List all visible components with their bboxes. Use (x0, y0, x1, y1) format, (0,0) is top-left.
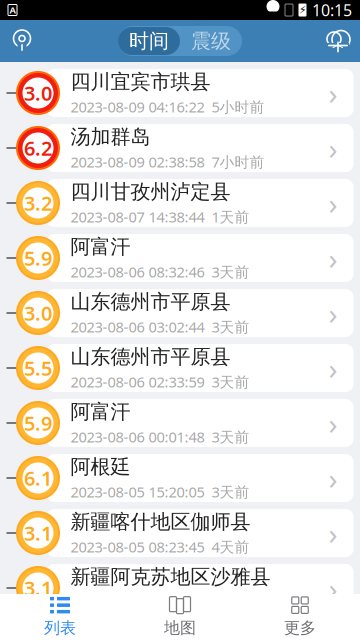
button[interactable]: 新疆喀什地区伽师县 (0, 509, 360, 557)
button[interactable]: 定位 (0, 20, 44, 62)
button[interactable]: 四川甘孜州泸定县 (0, 179, 360, 227)
staticText: 2023-08-05 15:20:05 (70, 482, 204, 501)
staticText: 5小时前 (211, 97, 264, 116)
staticText: 1天前 (211, 207, 249, 226)
staticText: › (328, 458, 337, 497)
staticText: 10:15 (312, 0, 352, 21)
button[interactable]: 列表 (0, 594, 120, 640)
staticText: 列表 (44, 618, 76, 638)
staticText: › (328, 293, 337, 332)
staticText: › (328, 513, 337, 552)
staticText: › (328, 348, 337, 387)
button[interactable]: 山东德州市平原县 (0, 289, 360, 337)
staticText: 震级 (191, 29, 231, 53)
staticText: 3天前 (211, 482, 249, 501)
button[interactable]: 更多 (240, 594, 360, 640)
button[interactable]: 阿根廷 (0, 454, 360, 502)
staticText: 新疆喀什地区伽师县 (70, 509, 250, 534)
button[interactable]: 地图 (120, 594, 240, 640)
button[interactable]: 阿富汗 (0, 399, 360, 447)
staticText: 四川宜宾市珙县 (70, 69, 210, 94)
staticText: 阿富汗 (70, 234, 130, 259)
staticText: 3.0 (24, 300, 52, 326)
staticText: 5.5 (24, 355, 52, 381)
staticText: 5.9 (24, 245, 52, 271)
staticText: 2023-08-09 04:16:22 (70, 97, 204, 116)
staticText: 3天前 (211, 427, 249, 446)
staticText: 3.1 (24, 575, 52, 601)
staticText: 阿根廷 (70, 454, 130, 479)
staticText: 山东德州市平原县 (70, 344, 230, 369)
staticText: 2023-08-06 00:01:48 (70, 427, 204, 446)
staticText: 3天前 (211, 262, 249, 281)
staticText: 2023-08-05 08:23:45 (70, 537, 204, 556)
staticText: 3.1 (24, 520, 52, 546)
staticText: 3天前 (211, 372, 249, 391)
staticText: 2023-08-05 08:05:45 (70, 592, 204, 611)
staticText: › (328, 403, 337, 442)
button[interactable]: 震级 (180, 27, 242, 55)
staticText: 新疆阿克苏地区沙雅县 (70, 564, 270, 589)
staticText: 7小时前 (211, 152, 264, 171)
staticText: 5.9 (24, 410, 52, 436)
staticText: 4天前 (211, 537, 249, 556)
button[interactable]: 四川宜宾市珙县 (0, 69, 360, 117)
staticText: 2023-08-06 02:33:59 (70, 372, 204, 391)
staticText: › (328, 238, 337, 277)
staticText: › (328, 73, 337, 112)
staticText: ︿ (332, 37, 344, 52)
button[interactable]: 新疆阿克苏地区沙雅县 (0, 564, 360, 612)
staticText: 汤加群岛 (70, 124, 150, 149)
staticText: 3.0 (24, 80, 52, 106)
staticText: 3.2 (24, 190, 52, 216)
staticText: 6.2 (24, 135, 52, 161)
button[interactable]: 上传 (316, 20, 360, 62)
staticText: 6.1 (24, 465, 52, 491)
button[interactable]: 汤加群岛 (0, 124, 360, 172)
staticText: A (9, 4, 15, 16)
staticText: 2023-08-09 02:38:58 (70, 152, 204, 171)
staticText: 时间 (129, 29, 169, 53)
staticText: 3天前 (211, 317, 249, 336)
staticText: › (328, 568, 337, 607)
staticText: 更多 (284, 618, 316, 638)
staticText: 2023-08-06 08:32:46 (70, 262, 204, 281)
staticText: 2023-08-06 03:02:44 (70, 317, 204, 336)
staticText: ⚡︎ (299, 4, 306, 16)
staticText: 山东德州市平原县 (70, 289, 230, 314)
staticText: › (328, 183, 337, 222)
staticText: 阿富汗 (70, 399, 130, 424)
staticText: 四川甘孜州泸定县 (70, 179, 230, 204)
button[interactable]: 阿富汗 (0, 234, 360, 282)
button[interactable]: 山东德州市平原县 (0, 344, 360, 392)
staticText: › (328, 128, 337, 167)
staticText: 2023-08-07 14:38:44 (70, 207, 204, 226)
staticText: 地图 (164, 618, 196, 638)
button[interactable]: 时间 (118, 27, 180, 55)
